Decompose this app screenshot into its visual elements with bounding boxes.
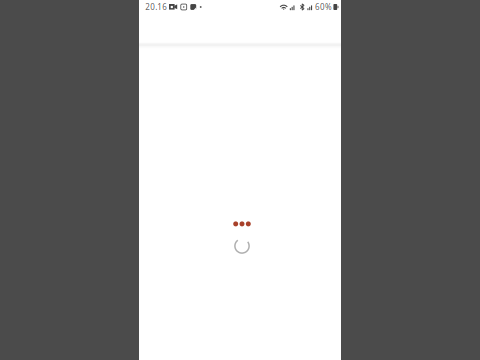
staticText: 20.16 [145, 2, 167, 12]
staticText: 60% [315, 2, 332, 12]
